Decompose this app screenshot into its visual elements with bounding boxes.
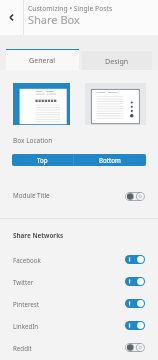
staticText: Module Title — [13, 191, 50, 200]
button[interactable]: Facebook — [0, 249, 158, 271]
staticText: Pinterest — [13, 300, 40, 308]
button[interactable]: On — [125, 299, 145, 308]
staticText: Box Location — [13, 136, 53, 145]
staticText: Facebook — [13, 256, 41, 264]
button[interactable]: Back — [0, 0, 23, 35]
button[interactable]: Bottom — [74, 154, 146, 166]
button[interactable]: Off — [125, 192, 145, 201]
button[interactable]: On — [125, 321, 145, 330]
button[interactable]: Off — [125, 343, 145, 352]
button[interactable]: Module Title — [0, 185, 158, 209]
staticText: Share Box — [28, 12, 80, 27]
staticText: Customizing • Single Posts — [28, 4, 113, 13]
staticText: Bottom — [99, 156, 121, 164]
button[interactable]: On — [125, 255, 145, 264]
button[interactable]: LinkedIn — [0, 315, 158, 337]
button[interactable]: Share box at top preview — [13, 83, 70, 125]
button[interactable]: Share box at bottom preview — [85, 83, 146, 125]
button[interactable]: Pinterest — [0, 293, 158, 315]
button[interactable]: General — [6, 49, 79, 70]
button[interactable]: Twitter — [0, 271, 158, 293]
staticText: Reddit — [13, 344, 32, 352]
staticText: LinkedIn — [13, 322, 39, 330]
button[interactable]: On — [125, 277, 145, 286]
staticText: General — [29, 55, 56, 65]
staticText: Share Networks — [13, 231, 64, 240]
staticText: Twitter — [13, 278, 34, 286]
button[interactable]: Reddit — [0, 337, 158, 359]
staticText: Top — [37, 156, 48, 164]
button[interactable]: Top — [12, 154, 73, 166]
staticText: Design — [105, 56, 129, 66]
button[interactable]: Design — [82, 51, 152, 70]
